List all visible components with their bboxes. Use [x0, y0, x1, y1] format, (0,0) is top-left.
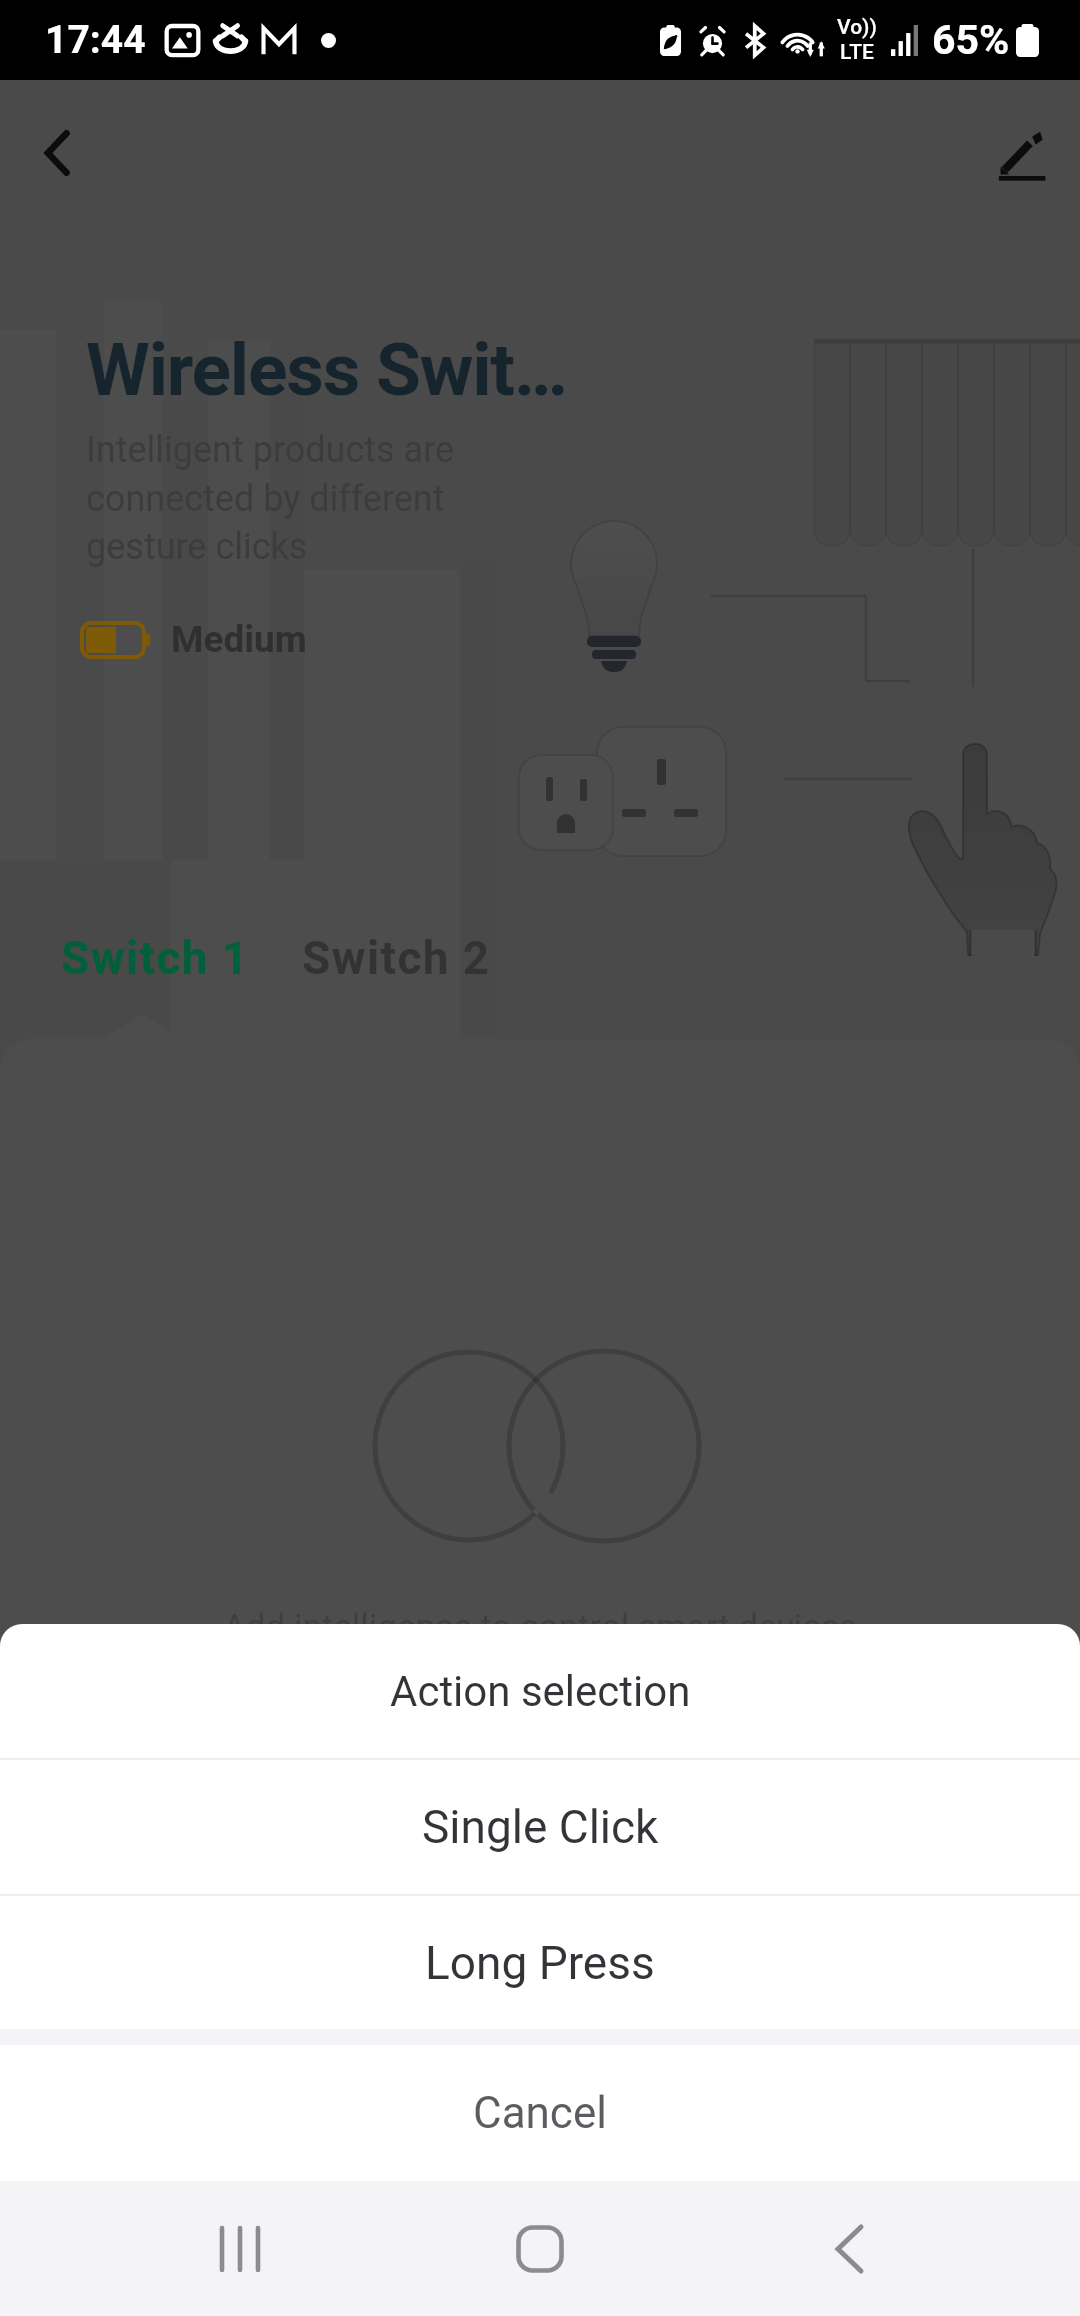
button[interactable]: Edit — [978, 110, 1064, 196]
button[interactable]: Back — [799, 2199, 899, 2299]
button[interactable]: Recent apps — [190, 2199, 290, 2299]
button[interactable]: Home — [490, 2199, 590, 2299]
staticText: Switch 1 — [61, 931, 250, 985]
staticText: Action selection — [390, 1667, 691, 1716]
button[interactable]: Switch 2 — [300, 931, 493, 985]
button[interactable]: Action selection — [0, 1624, 1080, 1758]
button[interactable]: Switch 1 — [59, 931, 252, 985]
staticText: Add intelligence to control smart device… — [0, 1607, 1080, 1648]
staticText: Intelligent products are connected by di… — [86, 429, 455, 568]
staticText: Wireless Swit… — [86, 327, 567, 413]
button[interactable]: Back — [14, 110, 100, 196]
staticText: Single Click — [422, 1800, 659, 1854]
staticText: 65% — [932, 16, 1010, 64]
staticText: Switch 2 — [302, 931, 491, 985]
staticText: Vo)) — [837, 15, 877, 40]
staticText: LTE — [840, 40, 874, 65]
staticText: Cancel — [473, 2087, 607, 2139]
staticText: Long Press — [425, 1936, 655, 1990]
button[interactable]: Single Click — [0, 1760, 1080, 1894]
button[interactable]: Long Press — [0, 1896, 1080, 2029]
staticText: 17:44 — [45, 17, 146, 63]
button[interactable]: Cancel — [0, 2045, 1080, 2181]
staticText: Medium — [171, 618, 307, 661]
